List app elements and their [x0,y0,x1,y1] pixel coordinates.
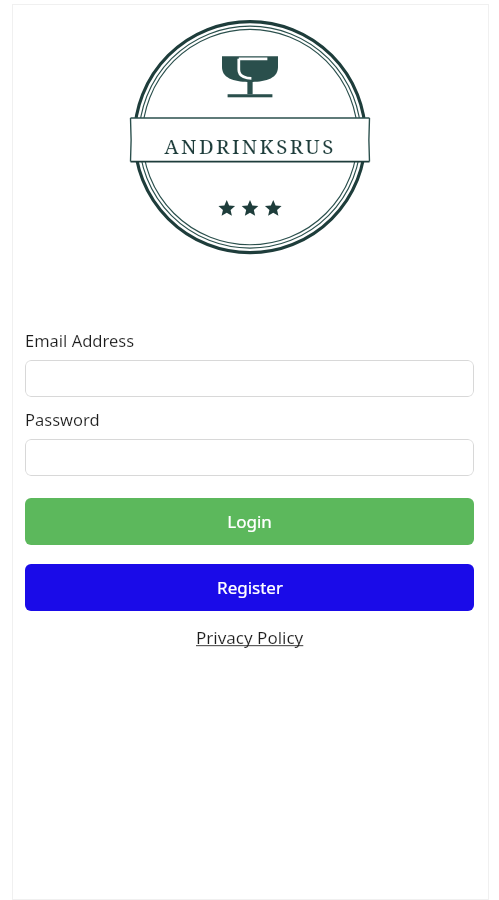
staticText: Privacy Policy [196,626,304,649]
staticText: Login [227,510,272,533]
staticText: Email Address [25,329,135,351]
button[interactable]: Login [25,498,474,545]
button[interactable] [25,360,474,397]
button[interactable]: Register [25,564,474,611]
other: AnDrinksRUs logo [125,20,375,265]
button[interactable]: Privacy Policy [190,623,310,652]
staticText: Password [25,408,100,430]
button[interactable] [25,439,474,476]
staticText: ANDRINKSRUS [164,133,336,160]
staticText: Register [217,576,283,599]
